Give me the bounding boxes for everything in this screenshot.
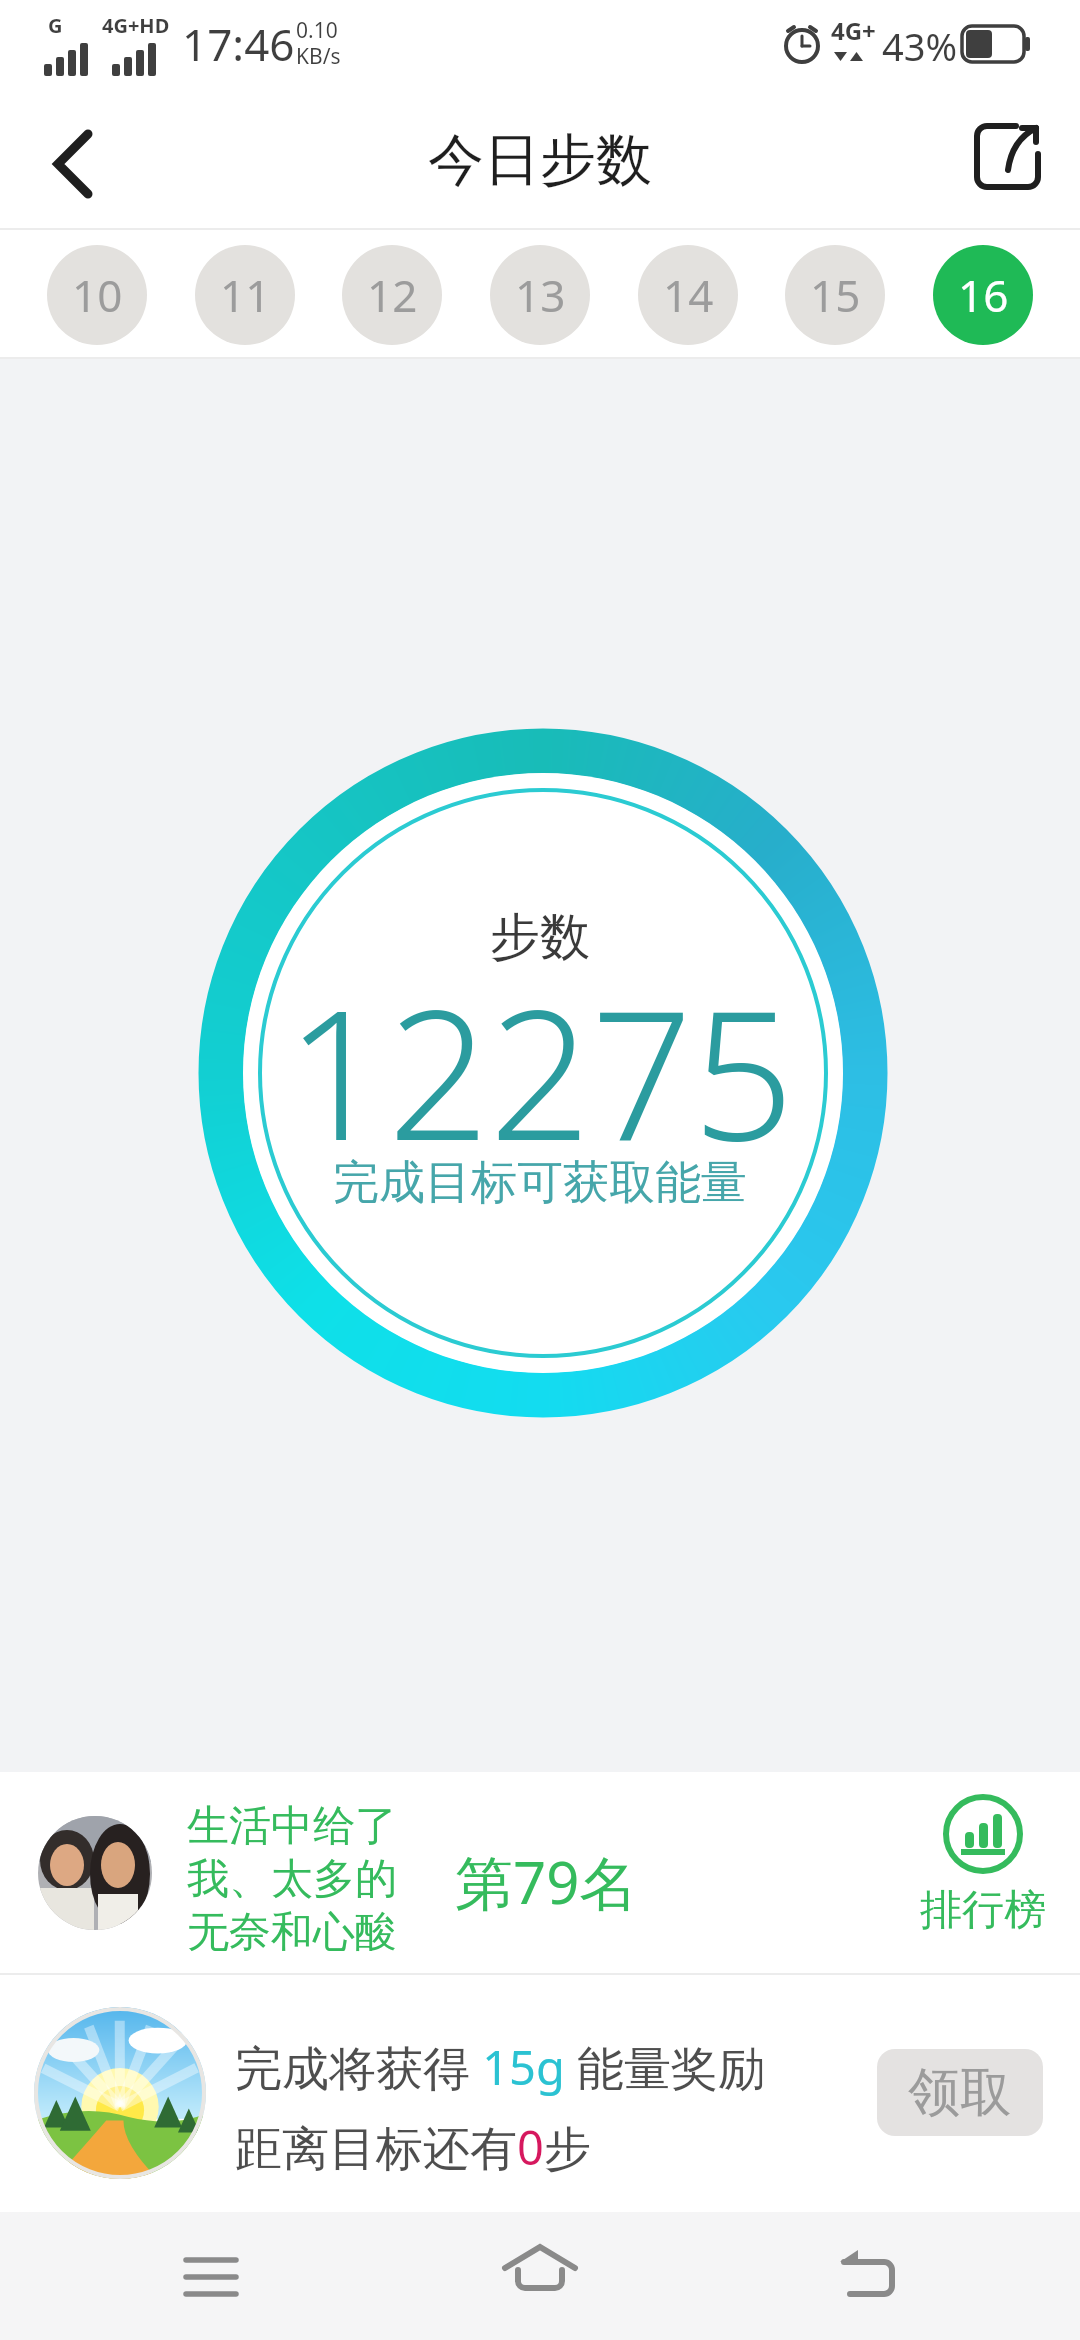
staticText: 生活中给了 [187, 1800, 397, 1853]
button[interactable]: 13 [490, 245, 590, 345]
staticText: 16 [958, 265, 1009, 325]
button[interactable]: 领取 [877, 2049, 1043, 2136]
staticText: G [48, 12, 63, 39]
staticText: 排行榜 [920, 1884, 1046, 1937]
button[interactable]: 15 [785, 245, 885, 345]
staticText: 11 [220, 265, 271, 325]
button[interactable] [30, 125, 110, 205]
button[interactable]: 10 [47, 245, 147, 345]
staticText: 4G+ [831, 14, 876, 47]
staticText: 第79名 [455, 1842, 638, 1921]
staticText: 我、太多的 [187, 1853, 397, 1906]
staticText: 距离目标还有0步 [235, 2115, 591, 2179]
staticText: 领取 [908, 2060, 1012, 2126]
staticText: 今日步数 [428, 125, 652, 196]
button[interactable]: 14 [638, 245, 738, 345]
button[interactable]: 11 [195, 245, 295, 345]
staticText: 完成目标可获取能量 [333, 1154, 747, 1212]
staticText: 12275 [286, 950, 795, 1192]
button[interactable]: 12 [342, 245, 442, 345]
staticText: 43% [882, 20, 958, 72]
button[interactable] [150, 2222, 270, 2330]
staticText: 完成将获得 15g 能量奖励 [235, 2035, 766, 2099]
button[interactable]: 16 [933, 245, 1033, 345]
staticText: 4G+HD [102, 12, 170, 39]
button[interactable]: 生活中给了 [0, 1772, 1080, 1975]
button[interactable]: 排行榜 [898, 1794, 1068, 1937]
staticText: 无奈和心酸 [187, 1906, 397, 1959]
staticText: 10 [72, 265, 123, 325]
staticText: 13 [515, 265, 566, 325]
staticText: 0.10 KB/s [296, 16, 341, 71]
staticText: 17:46 [182, 14, 295, 74]
button[interactable] [480, 2222, 600, 2330]
button[interactable] [810, 2222, 930, 2330]
button[interactable] [960, 110, 1055, 205]
staticText: 步数 [490, 906, 590, 969]
staticText: 12 [367, 265, 418, 325]
staticText: 15 [810, 265, 861, 325]
staticText: 14 [663, 265, 714, 325]
